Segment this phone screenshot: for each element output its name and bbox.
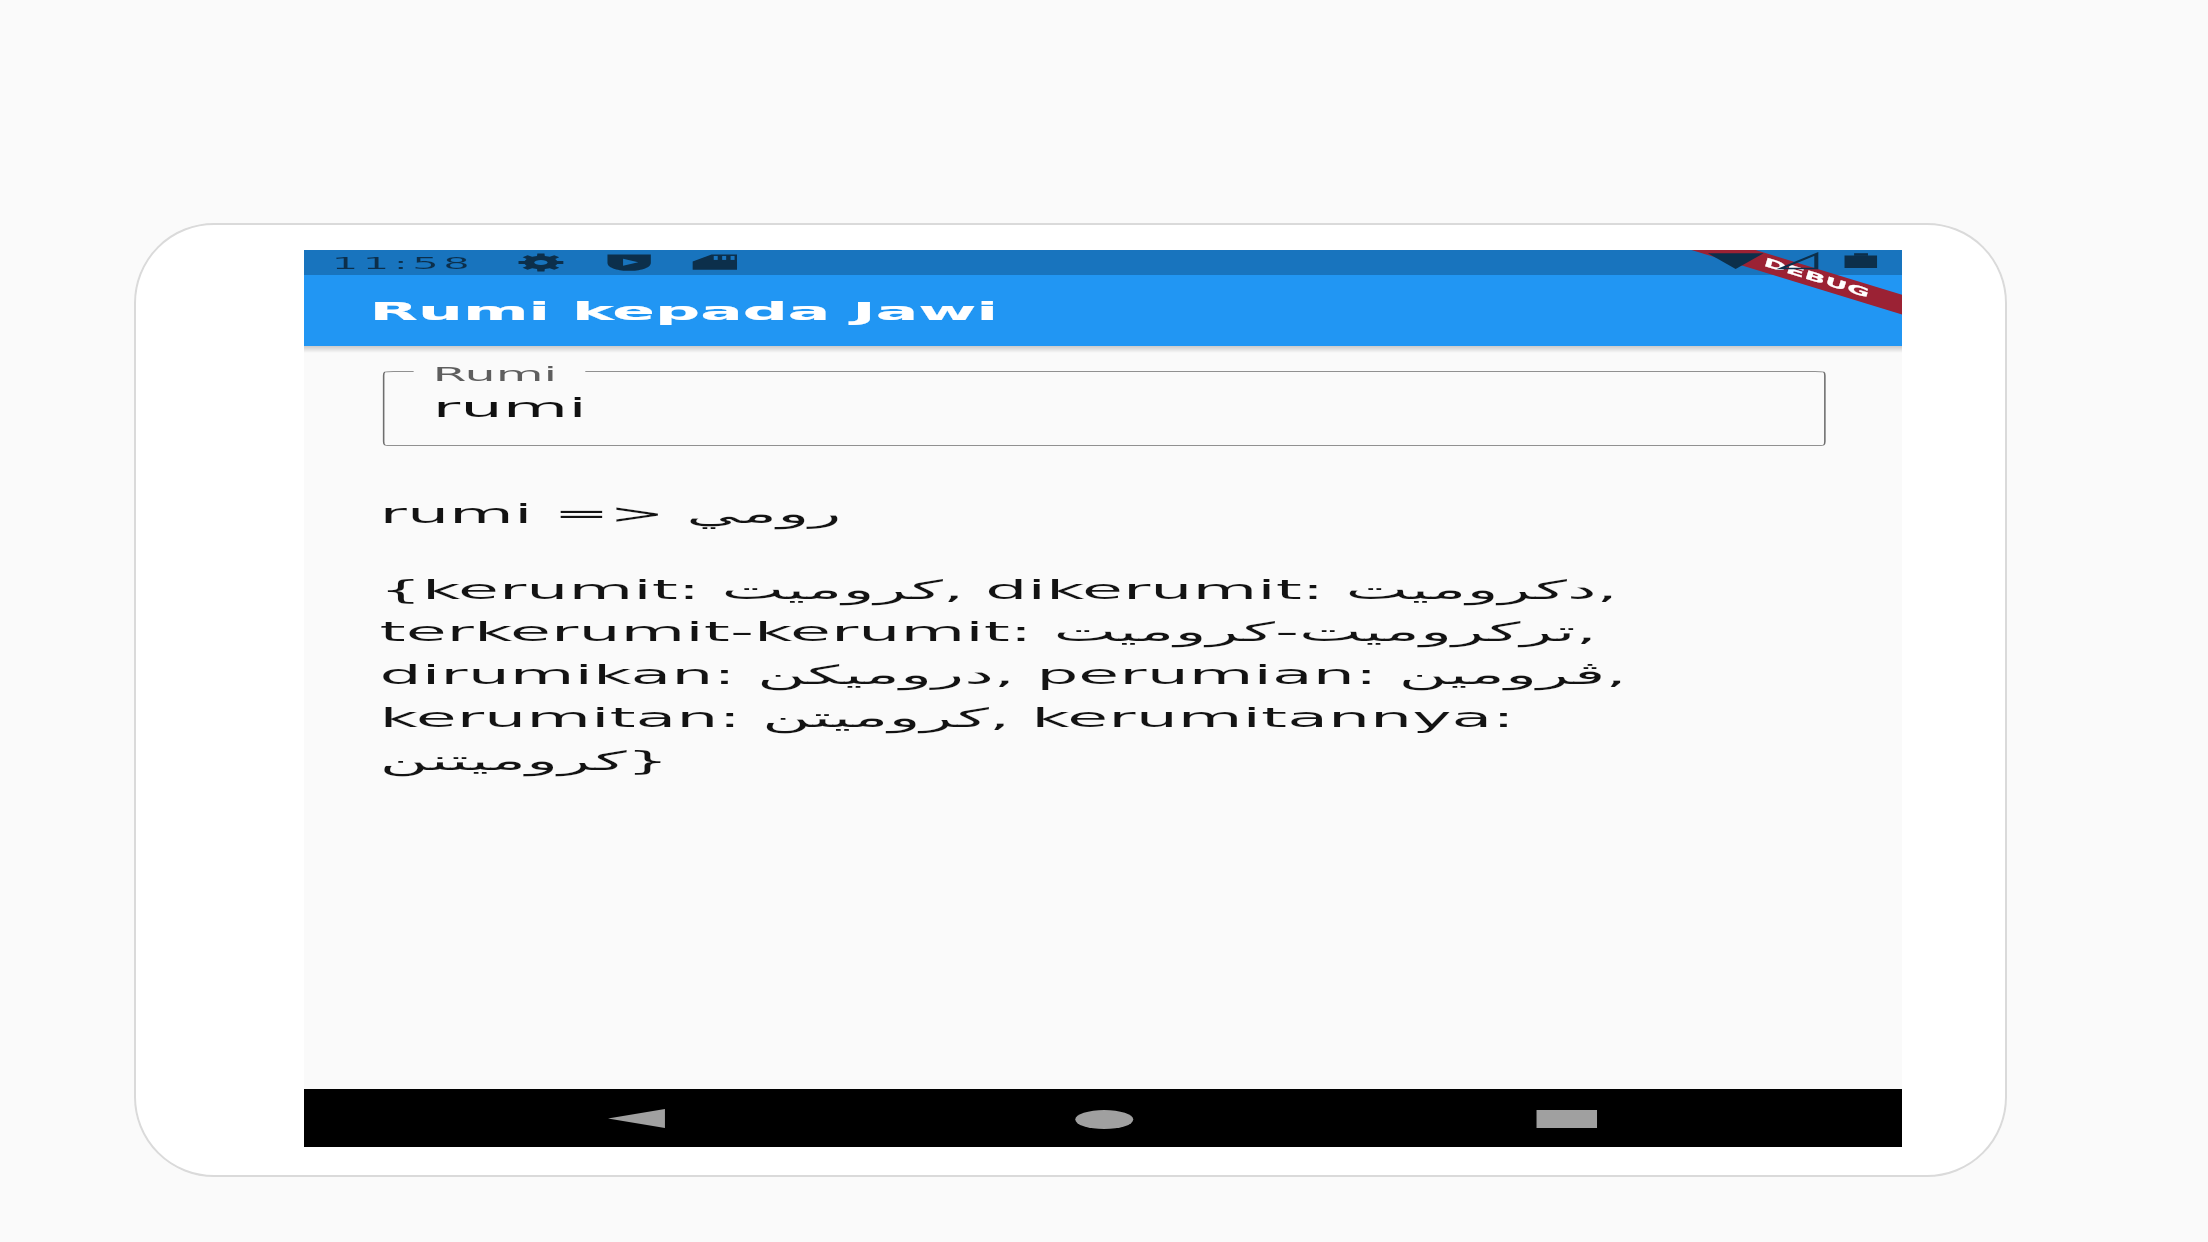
button[interactable]: Recent apps [1441,1089,1642,1147]
button[interactable]: Rumi [382,371,1826,446]
staticText: 11:58 [332,254,475,273]
button[interactable]: Back [556,1089,758,1147]
button[interactable]: Home [1002,1089,1204,1147]
staticText: rumi [432,392,589,423]
staticText: {kerumit: كروميت, dikerumit: دكروميت, te… [380,574,1725,777]
staticText: rumi => رومي [380,498,843,529]
staticText: DEBUG [1762,255,1871,301]
staticText: Rumi [432,363,558,386]
staticText: Rumi kepada Jawi [369,297,1000,326]
button[interactable]: Rumi kepada Jawi [304,275,1902,346]
